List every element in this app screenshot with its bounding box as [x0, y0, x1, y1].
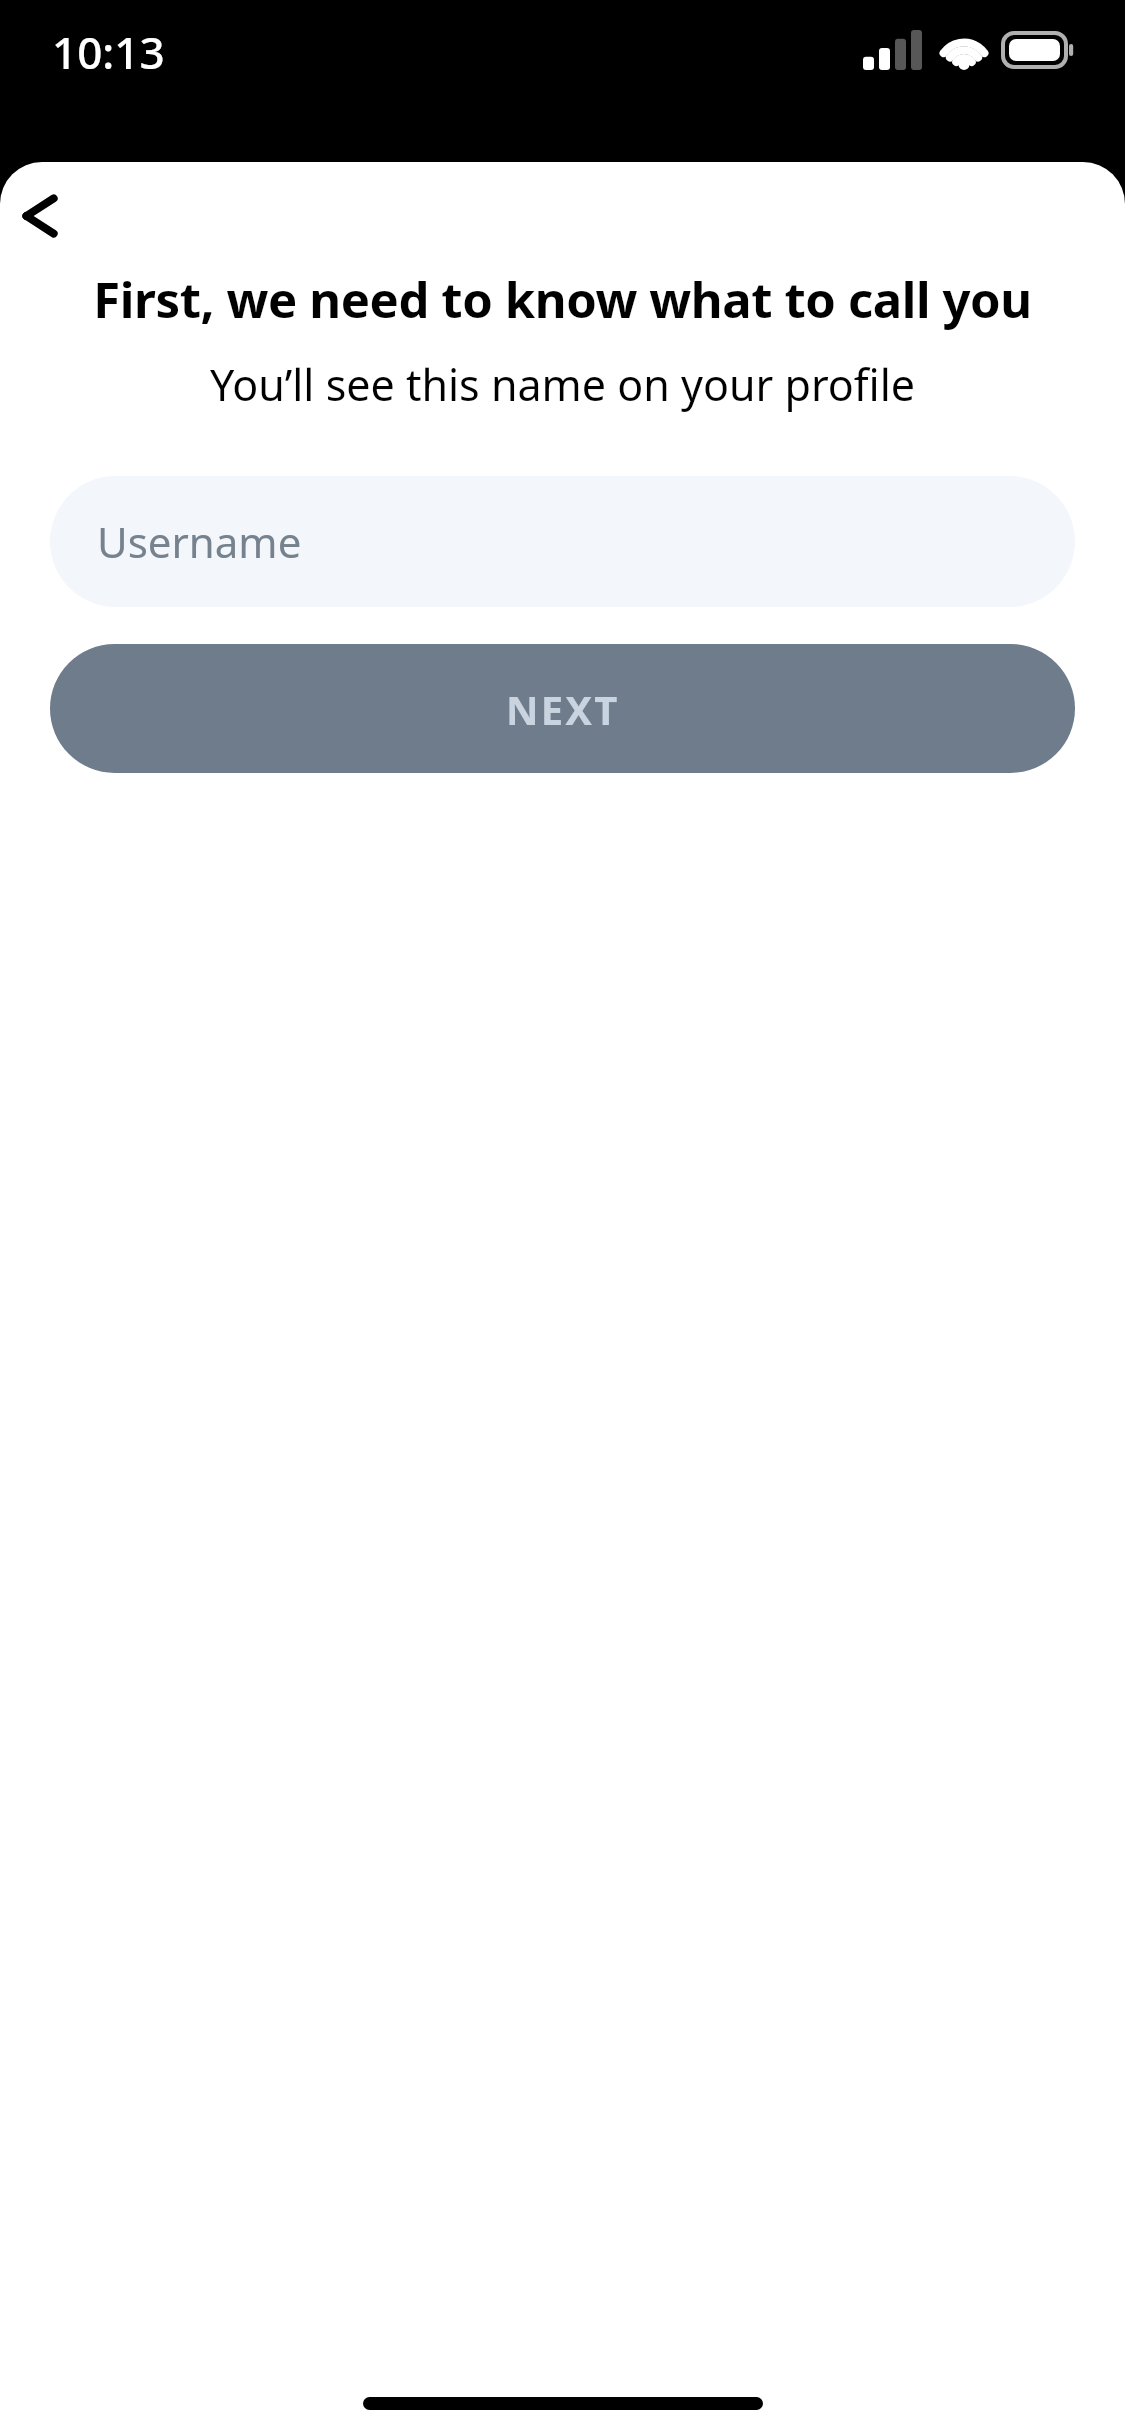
- button[interactable]: Back: [0, 172, 88, 260]
- button[interactable]: Username: [50, 476, 1075, 607]
- button[interactable]: NEXT: [50, 644, 1075, 773]
- staticText: You’ll see this name on your profile: [30, 355, 1095, 414]
- staticText: 10:13: [52, 22, 165, 82]
- staticText: Username: [97, 513, 302, 570]
- staticText: First, we need to know what to call you: [30, 266, 1095, 333]
- staticText: NEXT: [506, 682, 620, 736]
